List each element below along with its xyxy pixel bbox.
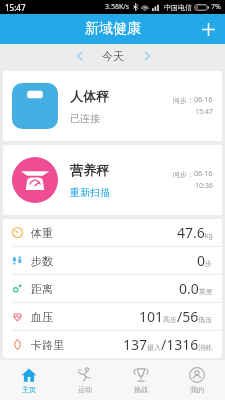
button[interactable]: 距离: [3, 275, 222, 302]
staticText: 主页: [22, 385, 36, 394]
staticText: 卡路里: [31, 338, 64, 352]
staticText: 运动: [78, 385, 92, 394]
staticText: 体重: [31, 226, 53, 240]
staticText: 3.58K/s: [105, 2, 130, 12]
staticText: 06-16: [194, 169, 213, 179]
staticText: 47.6kg: [177, 223, 213, 242]
staticText: 7%: [211, 2, 221, 12]
button[interactable]: 体重: [3, 219, 222, 246]
button[interactable]: 营养秤: [3, 145, 222, 215]
staticText: 人体秤: [70, 88, 109, 104]
button[interactable]: 人体秤: [3, 71, 222, 141]
button[interactable]: 主页: [0, 360, 57, 400]
staticText: 已连接: [70, 112, 100, 125]
staticText: 营养秤: [70, 162, 109, 178]
button[interactable]: Add: [191, 14, 225, 44]
staticText: 06-16: [194, 95, 213, 105]
staticText: 同步：: [173, 170, 194, 179]
staticText: 137摄入/1316消耗: [123, 335, 213, 354]
staticText: 步数: [31, 254, 53, 268]
staticText: 今天: [102, 49, 124, 63]
staticText: 15:47: [195, 107, 213, 117]
button[interactable]: Next day: [134, 44, 160, 68]
staticText: 10:36: [195, 181, 213, 191]
button[interactable]: 我的: [169, 360, 225, 400]
staticText: 重新扫描: [70, 186, 110, 199]
button[interactable]: 血压: [3, 303, 222, 330]
staticText: 挑战: [134, 385, 148, 394]
button[interactable]: 卡路里: [3, 331, 222, 358]
staticText: 我的: [190, 385, 204, 394]
button[interactable]: 步数: [3, 247, 222, 274]
staticText: 同步：: [173, 96, 194, 105]
staticText: 血压: [31, 310, 53, 324]
button[interactable]: 运动: [57, 360, 113, 400]
staticText: 新域健康: [85, 20, 141, 38]
staticText: 0步: [197, 251, 213, 270]
staticText: 15:47: [5, 2, 26, 13]
staticText: 距离: [31, 282, 53, 296]
staticText: 0.0英里: [179, 279, 213, 298]
staticText: 101高压/56低压: [139, 307, 213, 326]
button[interactable]: Previous day: [66, 44, 92, 68]
button[interactable]: 挑战: [113, 360, 169, 400]
staticText: 中国电信: [164, 3, 192, 12]
